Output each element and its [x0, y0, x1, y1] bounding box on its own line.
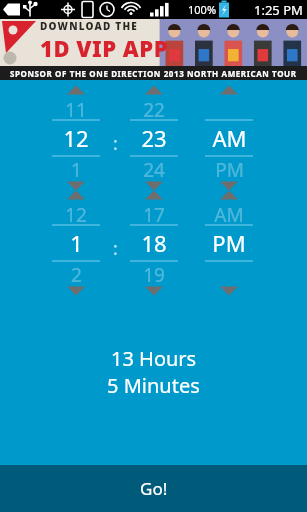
button[interactable]: 12: [52, 121, 100, 155]
staticText: :: [113, 236, 118, 261]
button[interactable]: Decrease start hour: [52, 179, 100, 193]
staticText: 1: [70, 228, 83, 258]
button[interactable]: Increase end meridiem: [205, 188, 253, 202]
button[interactable]: Decrease start minute: [130, 179, 178, 193]
staticText: 11: [65, 97, 87, 119]
staticText: SPONSOR OF THE ONE DIRECTION 2013 NORTH …: [10, 68, 297, 79]
staticText: PM: [212, 228, 246, 258]
staticText: 1: [71, 157, 82, 179]
staticText: DOWNLOAD THE: [40, 19, 138, 33]
button[interactable]: Decrease start meridiem: [205, 179, 253, 193]
staticText: AM: [212, 123, 247, 153]
staticText: 100%: [188, 2, 217, 17]
button[interactable]: Increase start hour: [52, 83, 100, 97]
button[interactable]: PM: [205, 226, 253, 260]
button[interactable]: Advertisement: Download the 1D VIP App: [0, 19, 307, 80]
button[interactable]: Increase end minute: [130, 188, 178, 202]
staticText: 5 Minutes: [107, 372, 200, 399]
button[interactable]: Decrease end minute: [130, 284, 178, 298]
staticText: 23: [141, 123, 167, 153]
button[interactable]: Increase start minute: [130, 83, 178, 97]
staticText: 22: [143, 97, 165, 119]
staticText: 1:25 PM: [254, 1, 303, 19]
staticText: 24: [143, 157, 165, 179]
button[interactable]: 23: [130, 121, 178, 155]
button[interactable]: AM: [205, 121, 253, 155]
staticText: 12: [63, 123, 89, 153]
button[interactable]: Decrease end meridiem: [205, 284, 253, 298]
staticText: 12: [65, 202, 87, 224]
staticText: Go!: [140, 477, 168, 500]
button[interactable]: Decrease end hour: [52, 284, 100, 298]
staticText: 2: [71, 262, 82, 284]
staticText: :: [113, 131, 118, 156]
staticText: 13 Hours: [111, 345, 197, 372]
staticText: PM: [215, 157, 244, 179]
staticText: 19: [143, 262, 165, 284]
button[interactable]: Go!: [0, 465, 307, 512]
staticText: 17: [143, 202, 165, 224]
button[interactable]: Increase end hour: [52, 188, 100, 202]
staticText: AM: [214, 202, 244, 224]
button[interactable]: 18: [130, 226, 178, 260]
button[interactable]: 1: [52, 226, 100, 260]
staticText: 18: [141, 228, 167, 258]
button[interactable]: Increase start meridiem: [205, 83, 253, 97]
staticText: 1D VIP APP: [40, 33, 169, 63]
